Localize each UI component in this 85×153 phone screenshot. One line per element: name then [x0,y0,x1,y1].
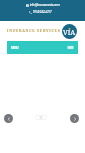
button[interactable]: Next slide [70,114,79,123]
button[interactable]: info@insurancevia.com [26,3,60,7]
button[interactable]: INSURANCE SERVICES [7,28,61,33]
staticText: VIA [63,28,76,38]
button[interactable]: (754) 242-4217 [29,10,52,14]
button[interactable]: MENU [11,46,19,50]
button[interactable]: VIA home [62,24,77,39]
staticText: MENU [11,46,19,50]
button[interactable]: Previous slide [4,114,13,123]
staticText: (754) 242-4217 [33,10,52,14]
button[interactable]: Open navigation menu [66,43,75,52]
staticText: INSURANCE SERVICES [7,28,61,33]
staticText: info@insurancevia.com [30,3,60,7]
